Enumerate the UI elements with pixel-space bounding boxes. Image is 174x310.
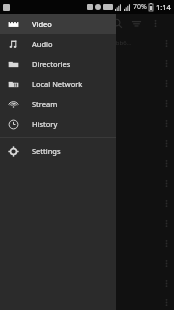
staticText: History [32, 119, 58, 129]
button[interactable]: _592cbb6... [0, 33, 174, 53]
button[interactable]: Item menu [158, 255, 174, 271]
button[interactable]: More options [146, 14, 165, 33]
button[interactable]: Item menu [158, 55, 174, 71]
staticText: Settings [32, 146, 61, 156]
button[interactable]: Item menu [158, 215, 174, 231]
button[interactable]: Item menu [158, 294, 174, 310]
button[interactable]: Item menu [0, 53, 174, 73]
staticText: Video [32, 19, 52, 29]
button[interactable]: Item menu [0, 173, 174, 193]
button[interactable]: Item menu [0, 133, 174, 153]
button[interactable]: Search [108, 14, 127, 33]
button[interactable]: Item menu [158, 115, 174, 131]
button[interactable]: Item menu [158, 235, 174, 251]
staticText: 1:14 [156, 2, 171, 12]
button[interactable]: Item menu [158, 35, 174, 51]
staticText: _592cbb6... [100, 39, 132, 47]
button[interactable]: Item menu [0, 73, 174, 93]
staticText: Directories [32, 59, 71, 69]
button[interactable]: Item menu [158, 275, 174, 291]
button[interactable]: Stream [0, 94, 116, 114]
button[interactable]: Item menu [0, 253, 174, 273]
button[interactable]: Item menu [0, 153, 174, 173]
button[interactable]: Sort [127, 14, 146, 33]
button[interactable]: Item menu [0, 193, 174, 213]
staticText: 70% [133, 2, 147, 12]
button[interactable]: Directories [0, 54, 116, 74]
staticText: Local Network [32, 79, 83, 89]
button[interactable]: Settings [0, 141, 116, 161]
button[interactable]: Item menu [0, 93, 174, 113]
button[interactable]: Item menu [158, 195, 174, 211]
staticText: Stream [32, 99, 58, 109]
button[interactable]: Video [0, 14, 116, 34]
button[interactable]: Item menu [0, 233, 174, 253]
button[interactable]: Item menu [0, 113, 174, 133]
button[interactable]: Item menu [158, 95, 174, 111]
button[interactable]: Local Network [0, 74, 116, 94]
button[interactable]: Item menu [158, 135, 174, 151]
button[interactable]: Item menu [0, 213, 174, 233]
button[interactable]: Item menu [158, 155, 174, 171]
button[interactable]: Item menu [158, 75, 174, 91]
button[interactable]: Audio [0, 34, 116, 54]
button[interactable]: History [0, 114, 116, 134]
button[interactable]: Item menu [158, 175, 174, 191]
staticText: Audio [32, 39, 53, 49]
button[interactable]: Item menu [0, 293, 174, 310]
button[interactable]: Item menu [0, 273, 174, 293]
